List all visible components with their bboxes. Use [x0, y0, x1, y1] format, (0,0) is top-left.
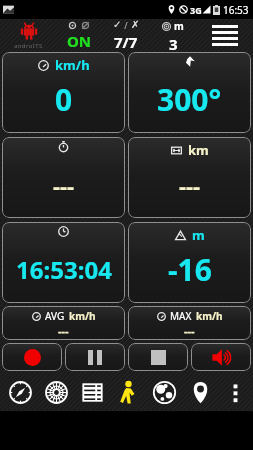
staticText: -16	[168, 249, 212, 290]
staticText: km/h	[69, 309, 96, 323]
button[interactable]: 16:53:04	[2, 222, 125, 303]
button[interactable]: Satellites	[39, 374, 73, 411]
button[interactable]	[128, 343, 188, 371]
button[interactable]: Walk	[111, 374, 145, 411]
staticText: ✓	[113, 19, 122, 31]
button[interactable]: Compass	[3, 374, 37, 411]
staticText: 16:53:04	[16, 253, 112, 286]
button[interactable]: Location	[183, 374, 217, 411]
staticText: 3G	[190, 4, 202, 16]
button[interactable]: km/h	[2, 52, 125, 133]
staticText: AVG	[45, 309, 65, 323]
staticText: km	[188, 141, 209, 159]
button[interactable]: AVG	[2, 306, 125, 340]
staticText: ✗	[131, 19, 140, 31]
button[interactable]: m	[150, 19, 196, 52]
button[interactable]: MAX	[128, 306, 251, 340]
button[interactable]	[65, 343, 125, 371]
staticText: ON	[67, 31, 92, 51]
button[interactable]: More	[218, 374, 252, 411]
button[interactable]	[2, 343, 62, 371]
staticText: 7/7	[114, 32, 138, 52]
button[interactable]: km	[128, 137, 251, 218]
button[interactable]: Menu	[196, 19, 253, 52]
staticText: m	[174, 19, 184, 33]
staticText: 3	[169, 34, 178, 52]
button[interactable]: Log	[75, 374, 109, 411]
button[interactable]	[191, 343, 251, 371]
button[interactable]: androITS	[0, 19, 56, 52]
staticText: MAX	[170, 309, 192, 323]
staticText: 0	[55, 79, 73, 120]
staticText: 16:53	[223, 3, 249, 17]
staticText: 300°	[157, 79, 222, 120]
button[interactable]: ON	[56, 19, 102, 52]
staticText: km/h	[196, 309, 223, 323]
button[interactable]: m	[128, 222, 251, 303]
staticText: ---	[179, 170, 201, 200]
staticText: ---	[184, 323, 195, 338]
staticText: ---	[53, 170, 75, 200]
staticText: m	[192, 226, 205, 244]
staticText: /	[122, 19, 131, 31]
button[interactable]: ---	[2, 137, 125, 218]
button[interactable]: ✓	[102, 19, 150, 52]
staticText: km/h	[55, 56, 90, 74]
staticText: ---	[58, 323, 69, 338]
staticText: androITS	[14, 42, 43, 50]
button[interactable]: Map	[147, 374, 181, 411]
button[interactable]: 300°	[128, 52, 251, 133]
